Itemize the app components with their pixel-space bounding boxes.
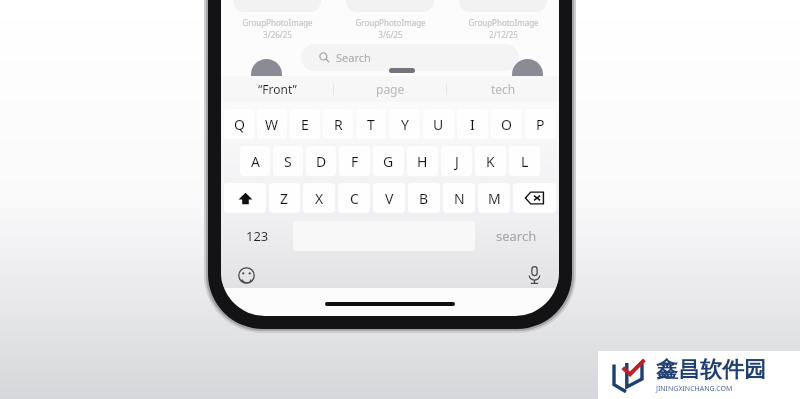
button[interactable]: V: [373, 183, 405, 213]
staticText: S: [284, 152, 292, 171]
staticText: Y: [401, 115, 409, 134]
button[interactable]: 鑫昌软件园: [598, 351, 800, 399]
button[interactable]: S: [273, 146, 303, 176]
staticText: H: [417, 152, 428, 171]
button[interactable]: Backspace: [513, 183, 556, 213]
staticText: 3/26/25: [263, 29, 292, 40]
staticText: search: [496, 227, 537, 245]
staticText: 3/6/25: [378, 29, 403, 40]
staticText: O: [501, 115, 512, 134]
staticText: M: [488, 189, 501, 208]
staticText: V: [385, 189, 394, 208]
staticText: GroupPhotoImage: [242, 17, 313, 28]
button[interactable]: P: [525, 109, 556, 139]
staticText: E: [301, 115, 309, 134]
button[interactable]: “Front”: [221, 76, 333, 102]
staticText: page: [376, 81, 405, 97]
button[interactable]: Z: [269, 183, 300, 213]
staticText: Z: [280, 189, 289, 208]
button[interactable]: D: [306, 146, 336, 176]
staticText: R: [334, 115, 343, 134]
button[interactable]: C: [338, 183, 370, 213]
button[interactable]: U: [423, 109, 454, 139]
staticText: tech: [491, 81, 516, 97]
staticText: GroupPhotoImage: [468, 17, 539, 28]
button[interactable]: N: [443, 183, 475, 213]
button[interactable]: H: [407, 146, 438, 176]
staticText: A: [251, 152, 260, 171]
staticText: U: [433, 115, 444, 134]
staticText: C: [350, 189, 359, 208]
button[interactable]: search: [477, 221, 556, 251]
button[interactable]: F: [339, 146, 370, 176]
staticText: T: [367, 115, 375, 134]
staticText: 鑫昌软件园: [656, 356, 766, 384]
staticText: K: [486, 152, 495, 171]
staticText: G: [383, 152, 394, 171]
button[interactable]: J: [441, 146, 472, 176]
button[interactable]: Search: [301, 44, 519, 71]
button[interactable]: B: [408, 183, 440, 213]
staticText: X: [315, 189, 324, 208]
button[interactable]: Shift: [224, 183, 266, 213]
staticText: “Front”: [258, 81, 297, 97]
staticText: P: [536, 115, 545, 134]
staticText: Q: [234, 115, 245, 134]
button[interactable]: GroupPhotoImage: [338, 0, 442, 40]
button[interactable]: Y: [389, 109, 420, 139]
staticText: L: [521, 152, 529, 171]
button[interactable]: X: [303, 183, 335, 213]
staticText: Search: [336, 50, 371, 65]
button[interactable]: R: [323, 109, 353, 139]
staticText: JININGXINCHANG.COM: [656, 384, 733, 394]
button[interactable]: W: [257, 109, 287, 139]
staticText: 2/12/25: [489, 29, 518, 40]
staticText: F: [351, 152, 359, 171]
button[interactable]: G: [373, 146, 404, 176]
staticText: B: [419, 189, 429, 208]
button[interactable]: page: [334, 76, 446, 102]
button[interactable]: Q: [224, 109, 254, 139]
button[interactable]: M: [478, 183, 510, 213]
button[interactable]: K: [475, 146, 506, 176]
button[interactable]: 123: [224, 221, 291, 251]
staticText: N: [454, 189, 465, 208]
staticText: GroupPhotoImage: [355, 17, 426, 28]
button[interactable]: GroupPhotoImage: [451, 0, 555, 40]
button[interactable]: tech: [447, 76, 559, 102]
button[interactable]: A: [240, 146, 270, 176]
button[interactable]: Dictation: [521, 262, 547, 288]
staticText: J: [455, 152, 459, 171]
staticText: W: [265, 115, 279, 134]
button[interactable]: I: [457, 109, 488, 139]
button[interactable]: E: [290, 109, 320, 139]
staticText: 123: [246, 227, 269, 245]
button[interactable]: T: [356, 109, 386, 139]
button[interactable]: Emoji keyboard: [233, 262, 259, 288]
button[interactable]: GroupPhotoImage: [225, 0, 329, 40]
staticText: D: [316, 152, 327, 171]
staticText: I: [470, 115, 475, 134]
button[interactable]: L: [509, 146, 540, 176]
button[interactable]: O: [491, 109, 522, 139]
